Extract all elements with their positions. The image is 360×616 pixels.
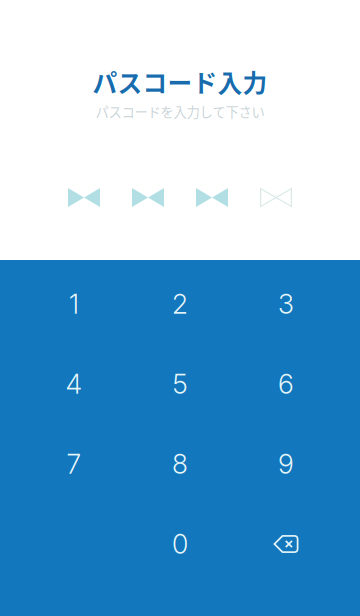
staticText: 6 (278, 368, 294, 400)
button[interactable]: 0 (127, 504, 233, 584)
button[interactable]: 3 (233, 264, 339, 344)
staticText: 9 (278, 448, 294, 480)
staticText: 8 (172, 448, 188, 480)
button[interactable]: 7 (21, 424, 127, 504)
button[interactable]: Delete (233, 504, 339, 584)
button[interactable]: 2 (127, 264, 233, 344)
button[interactable]: 9 (233, 424, 339, 504)
staticText: 0 (172, 528, 188, 560)
staticText: 7 (66, 448, 81, 480)
button[interactable]: 1 (21, 264, 127, 344)
staticText: 3 (278, 288, 294, 320)
staticText: 2 (172, 288, 188, 320)
staticText: 5 (172, 368, 187, 400)
button[interactable]: 5 (127, 344, 233, 424)
staticText: 4 (65, 368, 82, 400)
button[interactable]: 6 (233, 344, 339, 424)
staticText: パスコードを入力して下さい (95, 102, 264, 121)
staticText: 1 (69, 288, 79, 320)
button[interactable]: 8 (127, 424, 233, 504)
staticText: パスコード入力 (92, 64, 267, 100)
button[interactable]: 4 (21, 344, 127, 424)
